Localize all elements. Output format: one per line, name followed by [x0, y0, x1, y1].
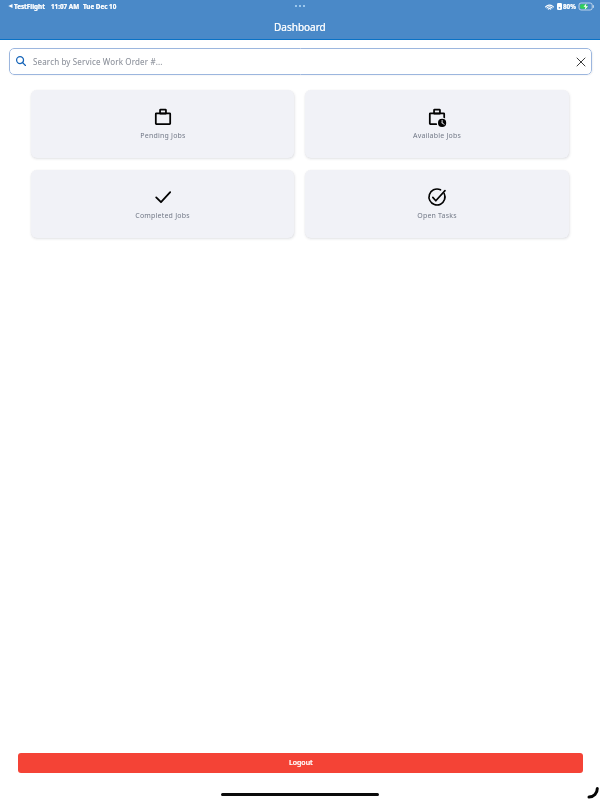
- staticText: 11:07 AM: [51, 2, 80, 11]
- staticText: Search by Service Work Order #...: [33, 56, 163, 67]
- staticText: Dashboard: [274, 20, 326, 34]
- staticText: Logout: [289, 758, 313, 768]
- staticText: Available Jobs: [413, 131, 461, 141]
- button[interactable]: Clear search: [574, 55, 587, 68]
- button[interactable]: Available Jobs: [305, 90, 569, 158]
- button[interactable]: Search by Service Work Order #...: [9, 48, 592, 75]
- button[interactable]: Completed Jobs: [31, 170, 294, 238]
- staticText: Pending Jobs: [140, 131, 186, 141]
- staticText: TestFlight: [14, 2, 45, 11]
- button[interactable]: Pending Jobs: [31, 90, 294, 158]
- staticText: Open Tasks: [417, 211, 457, 221]
- button[interactable]: Logout: [18, 753, 583, 773]
- other: Call: [582, 782, 600, 800]
- button[interactable]: Open Tasks: [305, 170, 569, 238]
- button[interactable]: TestFlight: [6, 1, 45, 11]
- staticText: Completed Jobs: [135, 211, 190, 221]
- staticText: 80%: [563, 2, 576, 11]
- staticText: Tue Dec 10: [83, 2, 117, 11]
